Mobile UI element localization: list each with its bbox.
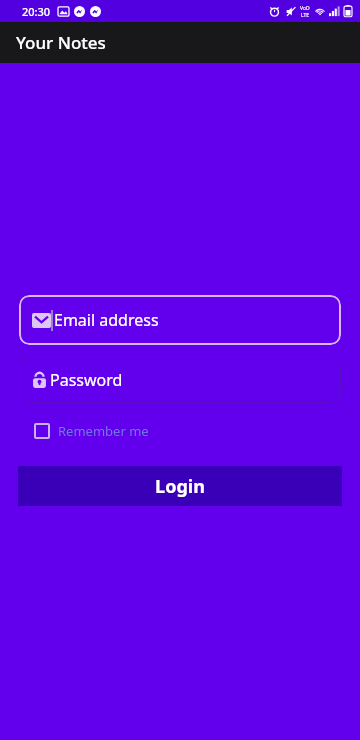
button[interactable]: Email address bbox=[19, 295, 341, 345]
button[interactable]: Password bbox=[19, 357, 341, 403]
staticText: Your Notes bbox=[16, 31, 106, 54]
staticText: Remember me bbox=[58, 422, 149, 440]
staticText: VoD bbox=[300, 5, 310, 12]
staticText: Login bbox=[155, 474, 205, 499]
button[interactable]: Remember me bbox=[34, 420, 157, 442]
staticText: Email address bbox=[54, 309, 159, 331]
staticText: LTE bbox=[301, 12, 310, 17]
staticText: 20:30 bbox=[22, 4, 51, 19]
button[interactable]: Login bbox=[18, 466, 342, 506]
staticText: Password bbox=[50, 369, 123, 391]
